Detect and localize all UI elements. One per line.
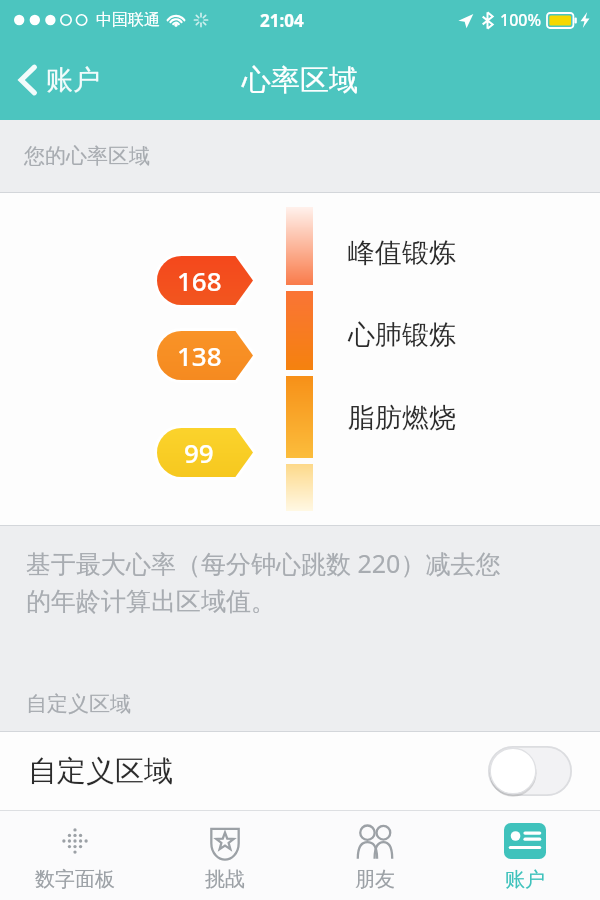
staticText: 100%	[500, 9, 542, 31]
staticText: 脂肪燃烧	[348, 401, 456, 435]
button[interactable]: 99	[157, 428, 253, 477]
staticText: 自定义区域	[28, 753, 173, 790]
staticText: 账户	[46, 63, 100, 97]
staticText: 您的心率区域	[24, 143, 150, 169]
button[interactable]: 138	[157, 331, 253, 380]
staticText: 99	[184, 435, 214, 470]
staticText: 数字面板	[35, 867, 115, 892]
staticText: 168	[177, 263, 222, 298]
button[interactable]: 朋友	[300, 810, 450, 900]
button[interactable]: 账户	[12, 55, 106, 105]
staticText: 心肺锻炼	[348, 318, 456, 352]
button[interactable]: 自定义区域	[0, 732, 600, 810]
staticText: 朋友	[355, 867, 395, 892]
button[interactable]: 自定义区域开关	[488, 746, 572, 796]
staticText: 138	[177, 338, 222, 373]
staticText: 峰值锻炼	[348, 236, 456, 270]
button[interactable]: 账户	[450, 810, 600, 900]
staticText: 心率区域	[242, 62, 358, 99]
button[interactable]: 168	[157, 256, 253, 305]
staticText: 基于最大心率（每分钟心跳数 220）减去您 的年龄计算出区域值。	[26, 546, 501, 618]
staticText: 中国联通	[96, 10, 160, 30]
staticText: 挑战	[205, 867, 245, 892]
staticText: 21:04	[260, 9, 304, 32]
button[interactable]: 挑战	[150, 810, 300, 900]
staticText: 账户	[505, 867, 545, 892]
staticText: 自定义区域	[26, 691, 131, 717]
button[interactable]: 数字面板	[0, 810, 150, 900]
